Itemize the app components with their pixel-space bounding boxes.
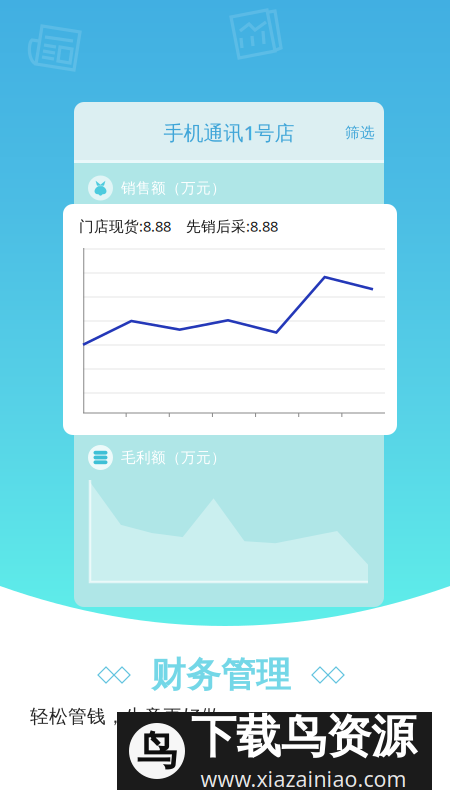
staticText: 筛选 <box>345 123 375 141</box>
staticText: 手机通讯1号店 <box>163 119 294 146</box>
staticText: 门店现货:8.88 先销后采:8.88 <box>79 216 278 236</box>
staticText: 毛利额（万元） <box>121 448 226 466</box>
button[interactable]: 筛选 <box>322 102 384 163</box>
staticText: 销售额（万元） <box>121 179 226 197</box>
staticText: 财务管理 <box>151 654 291 696</box>
staticText: 鸟 <box>137 726 177 775</box>
staticText: www.xiazainiao.com <box>200 765 406 793</box>
staticText: 轻松管钱，生意更好做 <box>30 705 220 728</box>
staticText: 下载鸟资源 <box>191 709 416 765</box>
